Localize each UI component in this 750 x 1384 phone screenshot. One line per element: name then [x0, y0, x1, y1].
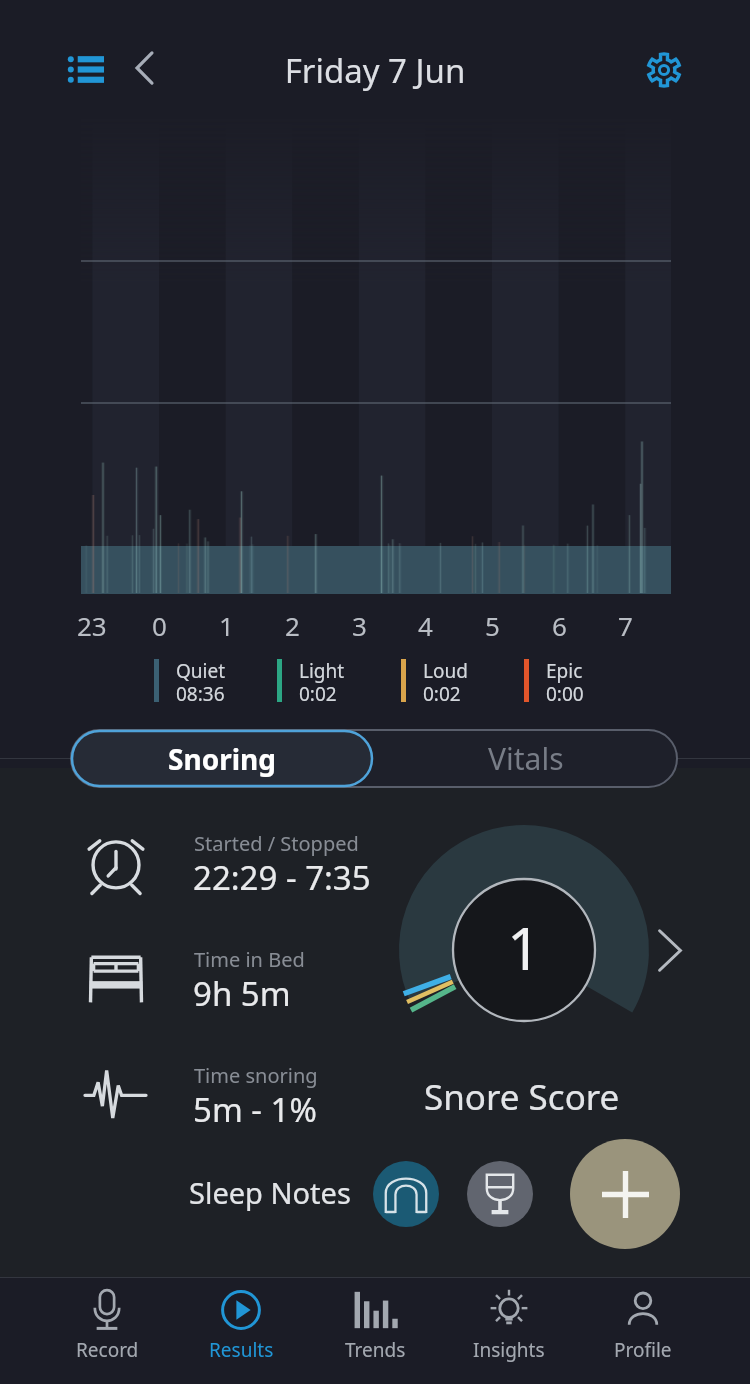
staticText: 3	[352, 608, 367, 643]
button[interactable]: Profile	[576, 1272, 710, 1378]
button[interactable]: Trends	[308, 1272, 442, 1378]
staticText: Loud	[423, 658, 468, 684]
staticText: Vitals	[488, 738, 564, 779]
staticText: 0:00	[546, 681, 584, 707]
button[interactable]: 1	[399, 825, 649, 1075]
staticText: 1	[219, 608, 234, 643]
staticText: Time in Bed	[194, 946, 305, 973]
staticText: Snore Score	[424, 1073, 620, 1121]
staticText: 5m - 1%	[193, 1087, 317, 1132]
button[interactable]: Next	[640, 920, 700, 980]
staticText: 5	[485, 608, 500, 643]
staticText: 1	[507, 907, 541, 987]
button[interactable]: Back	[114, 38, 174, 98]
button[interactable]: Insights	[442, 1272, 576, 1378]
staticText: Friday 7 Jun	[0, 48, 750, 93]
staticText: 9h 5m	[193, 971, 291, 1016]
staticText: Insights	[473, 1337, 545, 1363]
button[interactable]: Vitals	[374, 729, 678, 788]
staticText: Epic	[546, 658, 583, 684]
staticText: Light	[299, 658, 345, 684]
staticText: 0	[152, 608, 167, 643]
staticText: Snoring	[168, 740, 276, 778]
button[interactable]: Add note	[570, 1139, 680, 1249]
staticText: Profile	[614, 1337, 672, 1363]
staticText: Quiet	[176, 658, 226, 684]
staticText: Results	[209, 1337, 274, 1363]
staticText: 6	[552, 608, 567, 643]
button[interactable]: Record	[40, 1272, 174, 1378]
staticText: Record	[76, 1337, 139, 1363]
staticText: 0:02	[299, 681, 337, 707]
staticText: 22:29 - 7:35	[193, 855, 371, 900]
staticText: 0:02	[423, 681, 461, 707]
staticText: 7	[618, 608, 633, 643]
staticText: Started / Stopped	[194, 830, 359, 857]
staticText: 2	[285, 608, 300, 643]
button[interactable]: Results	[174, 1272, 308, 1378]
staticText: 08:36	[176, 681, 225, 707]
staticText: Time snoring	[194, 1062, 318, 1089]
staticText: Sleep Notes	[189, 1173, 351, 1212]
staticText: 4	[418, 608, 433, 643]
button[interactable]: Session list	[48, 35, 124, 103]
button[interactable]: Mouthpiece	[373, 1161, 439, 1227]
staticText: Trends	[345, 1337, 406, 1363]
button[interactable]: Settings	[636, 42, 692, 98]
button[interactable]: Snoring	[70, 729, 374, 788]
staticText: 23	[77, 608, 107, 643]
button[interactable]: Alcohol	[467, 1161, 533, 1227]
